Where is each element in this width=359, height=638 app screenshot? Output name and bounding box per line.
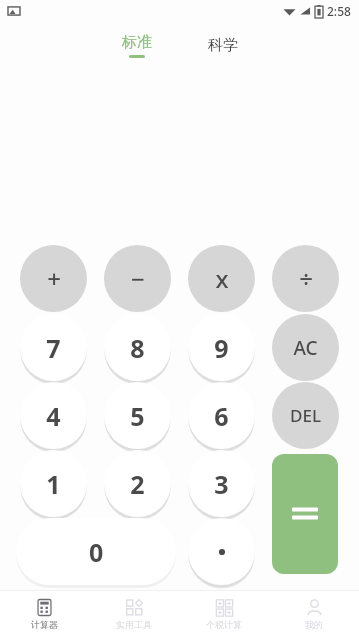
button[interactable]: − [104,245,171,312]
staticText: 4 [46,399,61,433]
button[interactable]: 标准 [110,29,164,62]
staticText: 2:58 [327,3,351,19]
button[interactable]: 7 [20,314,87,381]
staticText: 8 [130,331,145,365]
staticText: 标准 [122,33,152,52]
staticText: x [215,262,229,295]
button[interactable]: 8 [104,314,171,381]
button[interactable]: 9 [188,314,255,381]
staticText: + [47,262,61,295]
button[interactable]: ÷ [272,245,339,312]
button[interactable] [188,518,255,585]
staticText: 9 [214,331,229,365]
staticText: 5 [130,399,145,433]
button[interactable]: 计算器 [0,591,89,638]
button[interactable]: 4 [20,382,87,449]
button[interactable]: 6 [188,382,255,449]
button[interactable] [272,454,338,574]
staticText: ÷ [299,262,313,295]
staticText: − [131,262,145,295]
button[interactable]: 我的 [269,591,359,638]
staticText: 3 [214,467,229,501]
button[interactable]: 实用工具 [89,591,179,638]
staticText: 0 [89,535,104,569]
button[interactable]: x [188,245,255,312]
staticText: DEL [290,404,321,427]
button[interactable]: 科学 [196,32,250,59]
staticText: 我的 [305,619,323,630]
staticText: 2 [130,467,145,501]
button[interactable]: + [20,245,87,312]
button[interactable]: 3 [188,450,255,517]
button[interactable]: 0 [16,518,176,585]
staticText: 7 [46,331,61,365]
button[interactable]: 个税计算 [179,591,269,638]
staticText: 1 [46,467,61,501]
staticText: 6 [214,399,229,433]
staticText: 实用工具 [116,619,152,630]
staticText: 个税计算 [206,619,242,630]
button[interactable]: 1 [20,450,87,517]
button[interactable]: DEL [272,382,339,449]
button[interactable]: 2 [104,450,171,517]
button[interactable]: AC [272,314,339,381]
staticText: 科学 [208,36,238,55]
staticText: AC [293,335,318,361]
staticText: 计算器 [31,619,58,630]
button[interactable]: 5 [104,382,171,449]
